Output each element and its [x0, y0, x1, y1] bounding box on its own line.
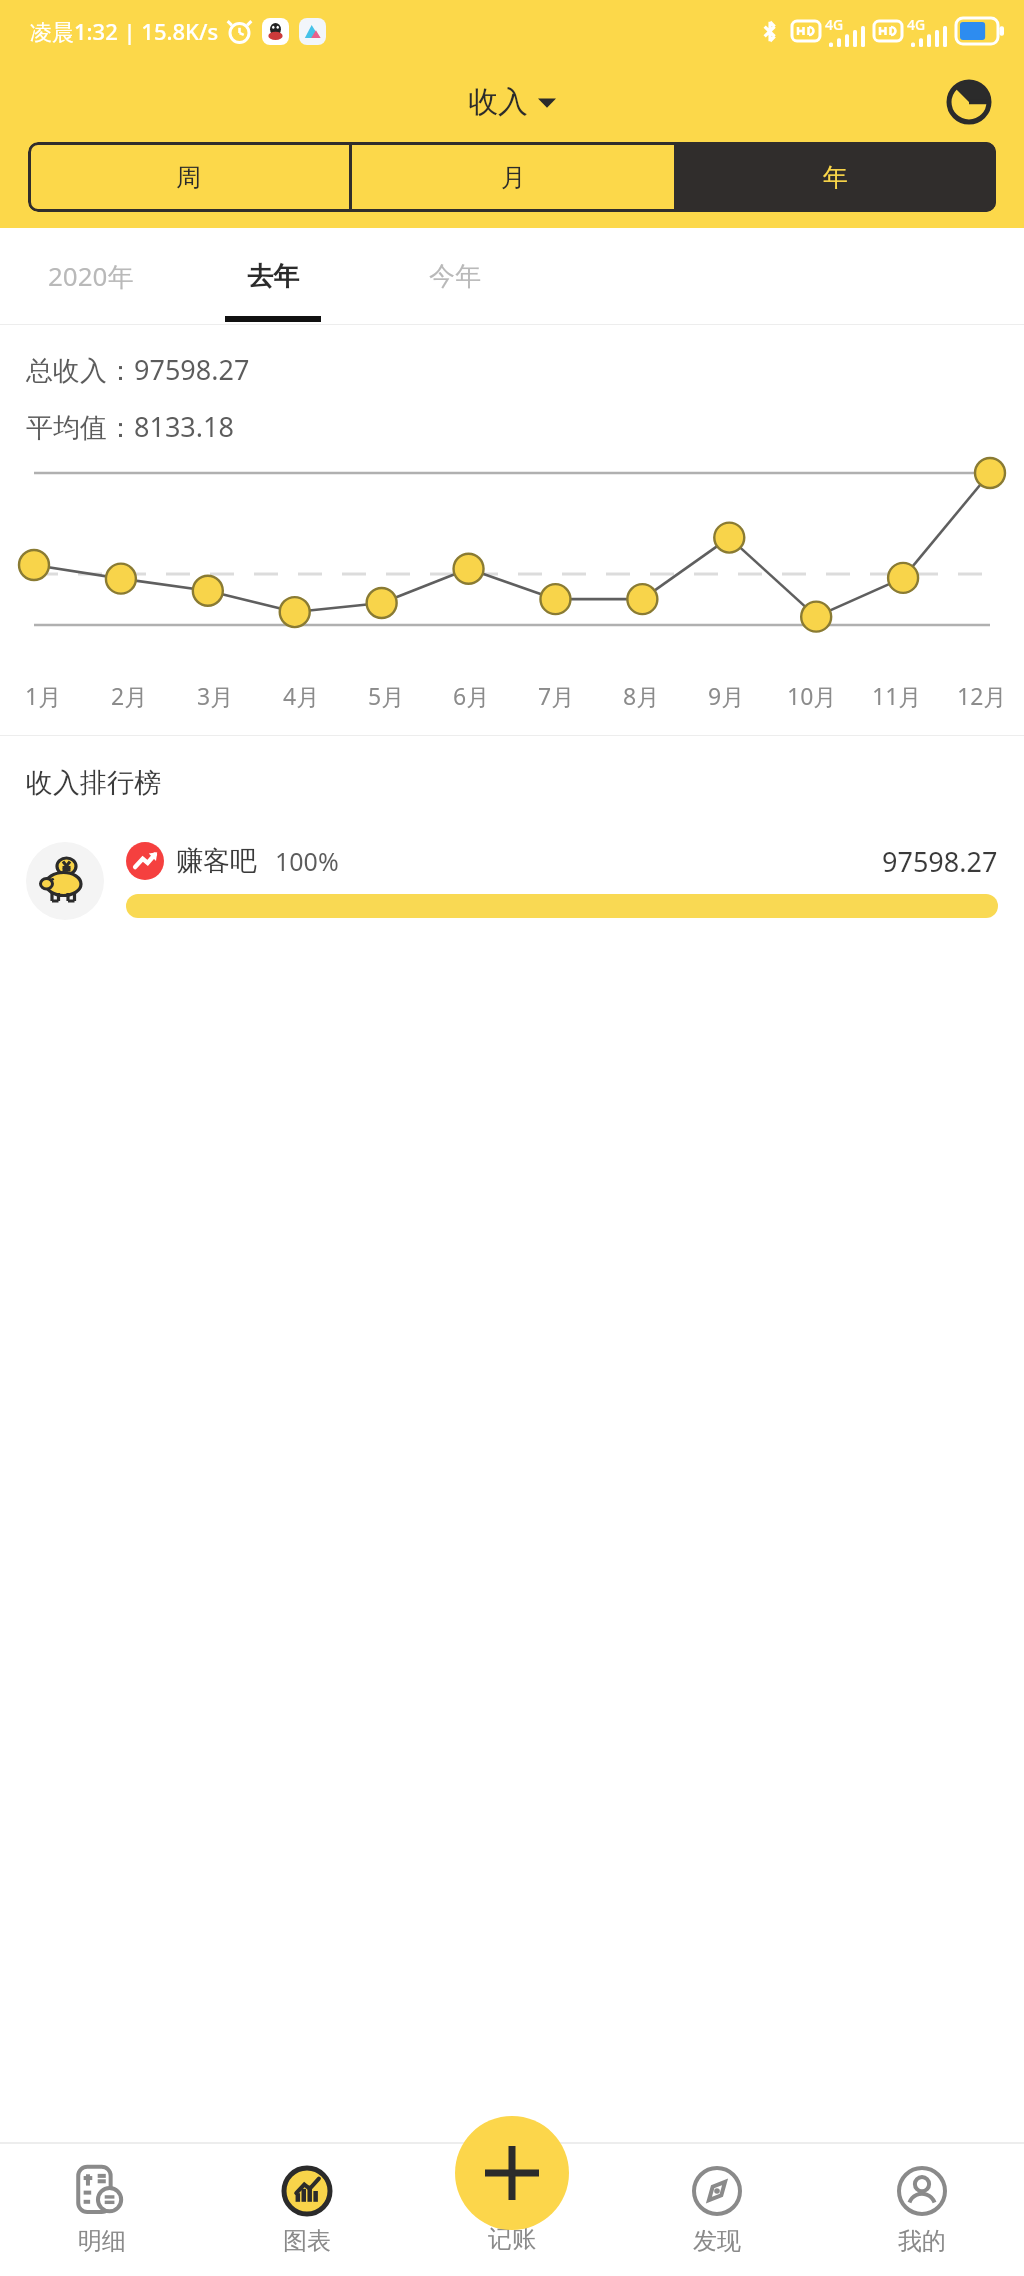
button[interactable]: 记账	[409, 2144, 614, 2276]
staticText: 4G	[907, 15, 926, 34]
staticText: 8月	[623, 680, 660, 711]
button[interactable]: 周	[28, 142, 349, 212]
staticText: 收入	[468, 83, 528, 121]
staticText: 周	[176, 162, 201, 193]
staticText: 平均值：8133.18	[26, 408, 234, 445]
staticText: 1月	[25, 680, 62, 711]
staticText: 图表	[283, 2226, 331, 2256]
staticText: 5月	[368, 680, 405, 711]
button[interactable]: 明细	[0, 2144, 204, 2276]
button[interactable]: 记账 Add	[455, 2116, 569, 2230]
button[interactable]: 月	[352, 142, 674, 212]
button[interactable]: 年	[674, 142, 996, 212]
button[interactable]: Pie chart view	[940, 73, 998, 131]
staticText: 6月	[453, 680, 490, 711]
staticText: 赚客吧	[176, 844, 257, 878]
staticText: 记账	[488, 2224, 536, 2254]
staticText: 12月	[957, 680, 1007, 711]
staticText: 今年	[429, 260, 481, 293]
staticText: 年	[823, 162, 848, 193]
staticText: 凌晨1:32 | 15.8K/s	[30, 16, 219, 46]
staticText: 9月	[708, 680, 745, 711]
staticText: 我的	[898, 2226, 946, 2256]
staticText: 收入排行榜	[26, 766, 161, 800]
staticText: 97598.27	[882, 843, 998, 880]
staticText: 4月	[283, 680, 320, 711]
staticText: 明细	[78, 2226, 126, 2256]
button[interactable]: 赚客吧	[0, 842, 1024, 920]
staticText: 3月	[197, 680, 234, 711]
button[interactable]: 我的	[819, 2144, 1024, 2276]
staticText: 总收入：97598.27	[26, 351, 250, 388]
staticText: 4G	[825, 15, 844, 34]
button[interactable]: 2020年	[0, 228, 182, 324]
staticText: 去年	[247, 260, 299, 293]
button[interactable]: 发现	[614, 2144, 819, 2276]
staticText: 100%	[275, 844, 339, 878]
button[interactable]: 去年	[182, 228, 364, 324]
staticText: 发现	[693, 2226, 741, 2256]
button[interactable]: 今年	[364, 228, 546, 324]
staticText: 11月	[872, 680, 922, 711]
button[interactable]: 图表	[204, 2144, 409, 2276]
staticText: 2月	[111, 680, 148, 711]
staticText: 月	[501, 162, 526, 193]
button[interactable]: 收入	[468, 83, 556, 121]
staticText: 10月	[787, 680, 837, 711]
staticText: 2020年	[48, 258, 134, 294]
staticText: 7月	[538, 680, 575, 711]
